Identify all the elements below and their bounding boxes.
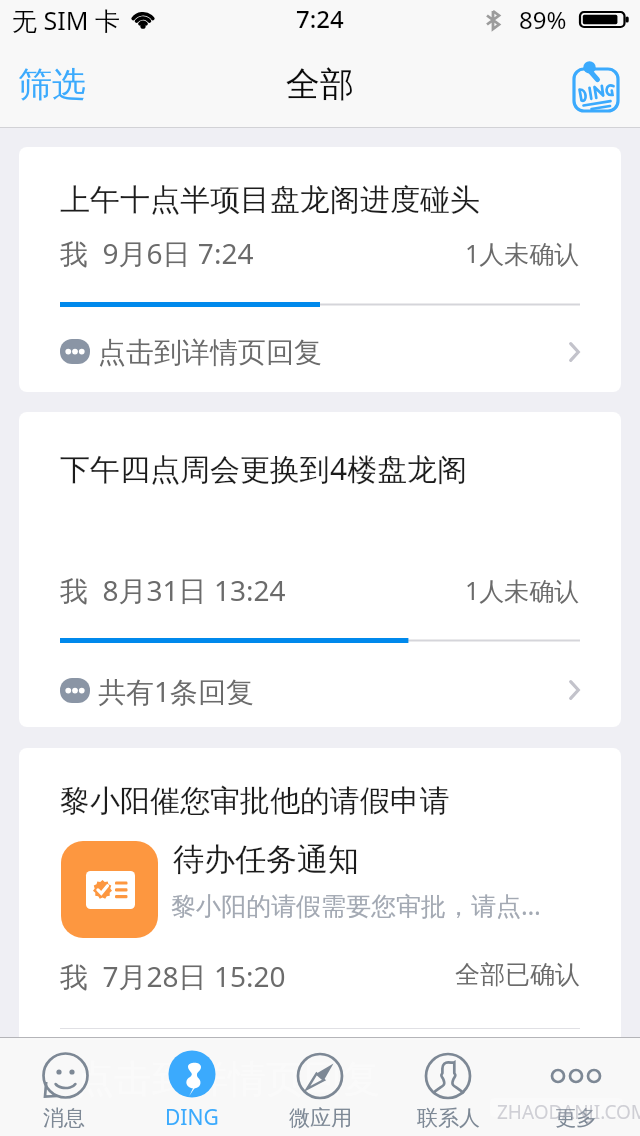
staticText: 黎小阳的请假需要您审批，请点… (171, 888, 541, 922)
staticText: 点击到详情页回复 (76, 1055, 380, 1103)
staticText: 我 9月6日 7:24 (60, 234, 254, 272)
staticText: 微应用 (289, 1105, 352, 1131)
button[interactable]: 共有1条回复 (19, 662, 621, 724)
staticText: DING (165, 1103, 219, 1132)
staticText: 黎小阳催您审批他的请假申请 (60, 782, 450, 820)
staticText: 更多 (555, 1105, 597, 1131)
staticText: 7:24 (296, 2, 344, 35)
button[interactable]: 微应用 (256, 1038, 384, 1136)
staticText: 消息 (43, 1105, 85, 1131)
button[interactable]: 更多 (512, 1038, 640, 1136)
button[interactable]: 黎小阳催您审批他的请假申请 (19, 748, 621, 1048)
staticText: 全部已确认 (455, 959, 580, 990)
staticText: 待办任务通知 (173, 840, 359, 879)
staticText: 联系人 (417, 1105, 480, 1131)
staticText: 共有1条回复 (98, 672, 255, 710)
staticText: 我 8月31日 13:24 (60, 571, 286, 609)
button[interactable]: New DING (556, 54, 640, 124)
staticText: 点击到详情页回复 (98, 335, 322, 370)
button[interactable]: 下午四点周会更换到4楼盘龙阁 (19, 412, 621, 727)
staticText: 89% (519, 3, 567, 36)
staticText: 1人未确认 (465, 236, 580, 270)
staticText: 全部 (286, 63, 354, 106)
button[interactable]: 联系人 (384, 1038, 512, 1136)
button[interactable]: 点击到详情页回复 (19, 325, 621, 384)
button[interactable]: 筛选 (0, 55, 104, 114)
staticText: ZHAODANJI.COM (497, 1099, 640, 1125)
staticText: 无 SIM 卡 (12, 3, 120, 37)
button[interactable]: DING (128, 1038, 256, 1136)
staticText: 我 7月28日 15:20 (60, 957, 286, 995)
staticText: 上午十点半项目盘龙阁进度碰头 (60, 181, 480, 219)
button[interactable]: 上午十点半项目盘龙阁进度碰头 (19, 147, 621, 392)
staticText: 1人未确认 (465, 573, 580, 607)
button[interactable]: 消息 (0, 1038, 128, 1136)
staticText: 下午四点周会更换到4楼盘龙阁 (60, 448, 468, 489)
staticText: 筛选 (18, 63, 86, 106)
